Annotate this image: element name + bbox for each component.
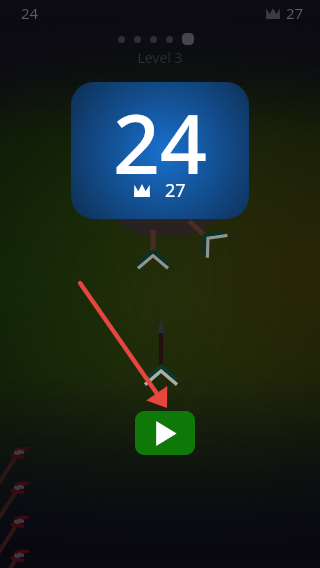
staticText: 24	[21, 3, 39, 23]
staticText: Level 3	[0, 48, 320, 568]
staticText: 27	[165, 178, 186, 203]
button[interactable]: Play	[135, 411, 195, 455]
button[interactable]: 24	[71, 82, 249, 219]
staticText: 24	[113, 86, 207, 198]
staticText: 27	[286, 3, 304, 23]
